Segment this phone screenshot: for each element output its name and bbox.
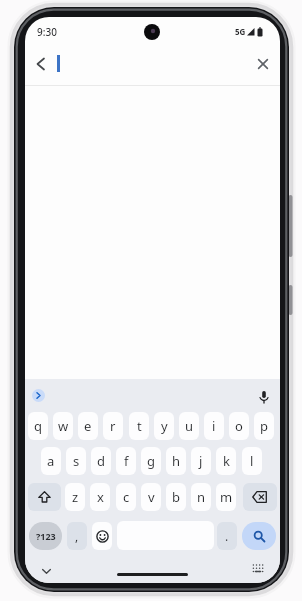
staticText: n: [197, 488, 206, 506]
button[interactable]: [242, 522, 276, 550]
staticText: b: [172, 488, 180, 506]
staticText: t: [137, 417, 142, 435]
staticText: q: [34, 417, 42, 435]
button[interactable]: i: [204, 412, 224, 440]
button[interactable]: d: [91, 447, 111, 475]
button[interactable]: k: [216, 447, 236, 475]
button[interactable]: [32, 389, 45, 402]
staticText: h: [172, 452, 181, 470]
button[interactable]: a: [41, 447, 61, 475]
button[interactable]: z: [65, 483, 85, 511]
staticText: u: [185, 417, 194, 435]
staticText: o: [235, 417, 243, 435]
button[interactable]: s: [66, 447, 86, 475]
button[interactable]: g: [141, 447, 161, 475]
button[interactable]: b: [166, 483, 186, 511]
button[interactable]: u: [179, 412, 199, 440]
button[interactable]: [29, 52, 53, 76]
button[interactable]: r: [103, 412, 123, 440]
staticText: v: [148, 488, 155, 506]
staticText: m: [220, 488, 233, 506]
button[interactable]: e: [78, 412, 98, 440]
staticText: x: [97, 488, 104, 506]
button[interactable]: [251, 52, 275, 76]
button[interactable]: [254, 387, 274, 407]
button[interactable]: y: [154, 412, 174, 440]
staticText: 5G: [235, 26, 246, 37]
button[interactable]: [28, 483, 61, 511]
button[interactable]: f: [116, 447, 136, 475]
staticText: i: [212, 417, 216, 435]
button[interactable]: [243, 483, 277, 511]
staticText: y: [161, 417, 168, 435]
staticText: z: [72, 488, 79, 506]
staticText: f: [124, 452, 129, 470]
staticText: ?123: [36, 530, 56, 542]
staticText: g: [147, 452, 155, 470]
button[interactable]: p: [254, 412, 274, 440]
staticText: j: [199, 452, 203, 470]
button[interactable]: c: [116, 483, 136, 511]
staticText: c: [123, 488, 130, 506]
button[interactable]: q: [28, 412, 48, 440]
button[interactable]: w: [53, 412, 73, 440]
button[interactable]: [36, 562, 56, 580]
staticText: s: [73, 452, 80, 470]
staticText: e: [84, 417, 92, 435]
staticText: .: [225, 528, 229, 544]
button[interactable]: .: [217, 522, 237, 550]
button[interactable]: [92, 522, 112, 550]
staticText: k: [223, 452, 230, 470]
staticText: r: [110, 417, 116, 435]
button[interactable]: n: [191, 483, 211, 511]
button[interactable]: ?123: [29, 522, 62, 550]
staticText: w: [58, 417, 69, 435]
button[interactable]: t: [129, 412, 149, 440]
staticText: 9:30: [37, 25, 57, 39]
staticText: ,: [75, 528, 79, 544]
staticText: a: [47, 452, 55, 470]
button[interactable]: x: [90, 483, 110, 511]
button[interactable]: j: [191, 447, 211, 475]
button[interactable]: o: [229, 412, 249, 440]
button[interactable]: l: [242, 447, 262, 475]
staticText: d: [97, 452, 105, 470]
button[interactable]: v: [141, 483, 161, 511]
button[interactable]: [247, 558, 269, 578]
button[interactable]: m: [216, 483, 236, 511]
staticText: l: [250, 452, 254, 470]
button[interactable]: ,: [67, 522, 87, 550]
button[interactable]: h: [166, 447, 186, 475]
staticText: p: [260, 417, 268, 435]
